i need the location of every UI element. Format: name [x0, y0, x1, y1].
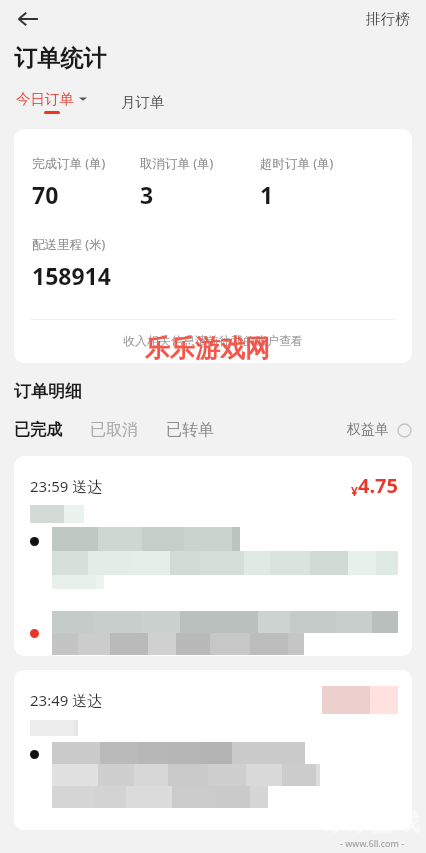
button[interactable]: 23:59 送达	[14, 456, 412, 656]
button[interactable]: 已取消	[90, 418, 138, 442]
button[interactable]: 23:49 送达	[14, 670, 412, 830]
button[interactable]: 完成订单 (单)	[14, 129, 412, 363]
staticText: 已取消	[90, 420, 138, 440]
staticText: 配送里程 (米)	[32, 236, 106, 253]
button[interactable]: 月订单	[119, 89, 167, 115]
staticText: 订单明细	[14, 381, 82, 402]
button[interactable]: 已完成	[14, 418, 62, 442]
staticText: 23:49 送达	[30, 690, 103, 710]
staticText: 1	[260, 179, 274, 210]
staticText: ¥	[351, 483, 358, 499]
staticText: 70	[32, 179, 59, 210]
button[interactable]: 权益单	[347, 419, 412, 441]
staticText: 3	[140, 179, 154, 210]
staticText: 权益单	[347, 421, 389, 439]
staticText: 完成订单 (单)	[32, 155, 106, 172]
staticText: 已转单	[166, 420, 214, 440]
staticText: 158914	[32, 260, 111, 291]
staticText: - www.6ll.com -	[340, 837, 405, 849]
staticText: 今日订单	[16, 90, 74, 108]
staticText: 已完成	[14, 420, 62, 440]
staticText: 订单统计	[14, 44, 106, 73]
staticText: 排行榜	[366, 10, 410, 28]
staticText: 23:59 送达	[30, 476, 103, 496]
staticText: 取消订单 (单)	[140, 155, 214, 172]
staticText: 乐乐游戏网	[145, 333, 270, 364]
staticText: 收入相关信息请前往我的账户查看	[14, 333, 412, 348]
button[interactable]: 今日订单	[14, 90, 89, 114]
button[interactable]: Back	[8, 0, 48, 38]
staticText: 月订单	[121, 93, 165, 111]
staticText: 4.75	[358, 472, 398, 499]
button[interactable]: 排行榜	[350, 4, 426, 34]
staticText: 超时订单 (单)	[260, 155, 334, 172]
staticText: 乐乐游戏	[324, 807, 420, 837]
button[interactable]: 已转单	[166, 418, 214, 442]
